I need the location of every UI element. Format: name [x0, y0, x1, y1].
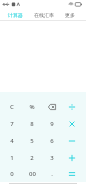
staticText: 1 — [10, 154, 14, 162]
staticText: 5 — [30, 137, 34, 145]
button[interactable]: 2 — [22, 149, 42, 166]
staticText: 00 — [29, 170, 36, 178]
button[interactable]: 00 — [22, 166, 42, 182]
staticText: % — [29, 103, 35, 111]
button[interactable]: 1 — [2, 149, 22, 166]
button[interactable] — [62, 149, 82, 166]
button[interactable]: 6 — [42, 132, 62, 149]
button[interactable]: C — [2, 98, 22, 115]
button[interactable]: 计算器 — [8, 9, 23, 20]
staticText: C — [10, 103, 14, 111]
button[interactable]: 4 — [2, 132, 22, 149]
staticText: 计算器 — [8, 12, 23, 18]
staticText: 在线汇率 — [34, 12, 54, 18]
button[interactable] — [62, 132, 82, 149]
staticText: 6 — [50, 137, 54, 145]
staticText: 2 — [30, 154, 34, 162]
button[interactable] — [62, 115, 82, 132]
staticText: 更多 — [65, 12, 75, 18]
button[interactable]: 更多 — [65, 9, 75, 20]
staticText: 0 — [10, 170, 14, 178]
button[interactable] — [62, 166, 82, 182]
button[interactable]: 0 — [2, 166, 22, 182]
staticText: 4 — [10, 137, 14, 145]
button[interactable]: Backspace — [42, 98, 62, 115]
staticText: 8 — [30, 120, 34, 128]
button[interactable]: 7 — [2, 115, 22, 132]
staticText: . — [51, 170, 53, 178]
staticText: 9 — [50, 120, 54, 128]
button[interactable] — [62, 98, 82, 115]
button[interactable]: 9 — [42, 115, 62, 132]
button[interactable]: 5 — [22, 132, 42, 149]
button[interactable]: % — [22, 98, 42, 115]
button[interactable]: 3 — [42, 149, 62, 166]
button[interactable]: 8 — [22, 115, 42, 132]
button[interactable]: 在线汇率 — [34, 9, 54, 20]
staticText: 7 — [10, 120, 14, 128]
staticText: 3 — [50, 154, 54, 162]
